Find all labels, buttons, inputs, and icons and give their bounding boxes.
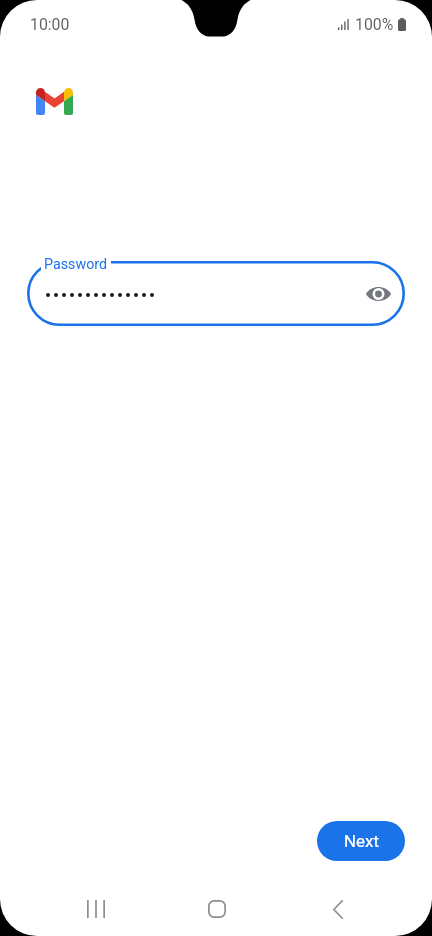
button[interactable]: Home [181,873,253,936]
staticText: Next [344,831,379,851]
staticText: 10:00 [30,15,70,34]
staticText: 100% [355,15,394,34]
staticText: Password [44,256,108,273]
button[interactable]: Next [317,821,405,861]
button[interactable]: Show password [360,276,396,312]
button[interactable]: Recents [60,873,132,936]
button[interactable]: Back [302,873,374,936]
